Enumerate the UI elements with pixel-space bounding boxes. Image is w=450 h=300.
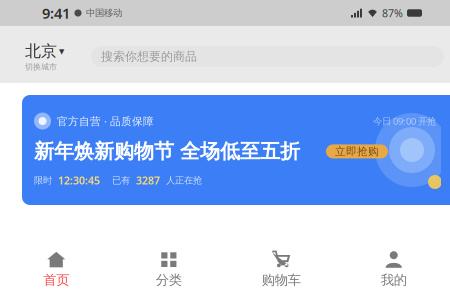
staticText: 立即抢购	[335, 145, 379, 158]
staticText: 北京	[25, 41, 57, 61]
staticText: 购物车	[262, 272, 301, 288]
staticText: 中国移动	[86, 7, 122, 19]
button[interactable]: 搜索你想要的商品	[91, 46, 444, 67]
staticText: 我的	[381, 272, 407, 288]
staticText: 已有	[106, 175, 130, 186]
staticText: 搜索你想要的商品	[101, 49, 197, 64]
staticText: ▾	[59, 45, 64, 57]
button[interactable]: 购物车	[225, 242, 337, 300]
staticText: 87%	[382, 6, 403, 20]
staticText: 12:30:45	[58, 173, 100, 187]
staticText: 切换城市	[25, 62, 57, 72]
staticText: 人正在抢	[166, 175, 202, 186]
button[interactable]: 北京	[25, 41, 81, 72]
staticText: 3287	[136, 173, 160, 187]
staticText: 官方自营 · 品质保障	[57, 114, 154, 128]
staticText: 分类	[156, 272, 182, 288]
staticText: 新年焕新购物节 全场低至五折	[34, 139, 300, 164]
button[interactable]: 官方自营 · 品质保障	[0, 95, 450, 205]
staticText: 今日 09:00 开抢	[373, 115, 436, 127]
button[interactable]: 分类	[112, 242, 225, 300]
staticText: 首页	[43, 272, 69, 288]
button[interactable]: 首页	[0, 242, 112, 300]
staticText: 9:41	[42, 3, 70, 23]
button[interactable]: 我的	[337, 242, 450, 300]
staticText: 限时	[34, 175, 52, 186]
